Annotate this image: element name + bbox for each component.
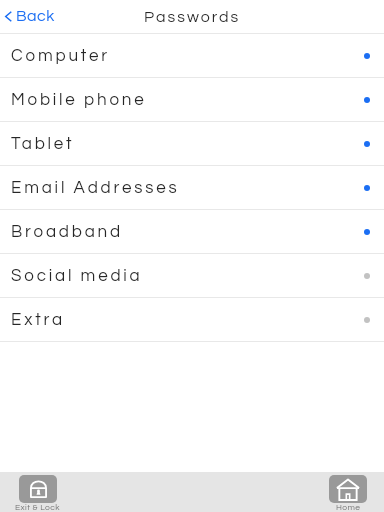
button[interactable]: Back [0,6,65,28]
button[interactable]: Computer [0,34,384,77]
staticText: Computer [11,47,110,65]
other: Exit and Lock [30,480,47,498]
staticText: Tablet [11,135,75,153]
staticText: Social media [11,267,143,285]
button[interactable]: Home [329,475,367,512]
staticText: Passwords [144,9,241,25]
staticText: Exit & Lock [15,503,60,512]
other: Home [336,478,360,501]
button[interactable]: Exit and Lock [15,475,60,512]
button[interactable]: Social media [0,254,384,297]
button[interactable]: Broadband [0,210,384,253]
button[interactable]: Tablet [0,122,384,165]
button[interactable]: Mobile phone [0,78,384,121]
staticText: Extra [11,311,65,329]
staticText: Email Addresses [11,179,180,197]
staticText: Mobile phone [11,91,147,109]
button[interactable]: Email Addresses [0,166,384,209]
staticText: Home [336,503,361,512]
staticText: Broadband [11,223,123,241]
button[interactable]: Extra [0,298,384,341]
staticText: Back [16,8,55,24]
